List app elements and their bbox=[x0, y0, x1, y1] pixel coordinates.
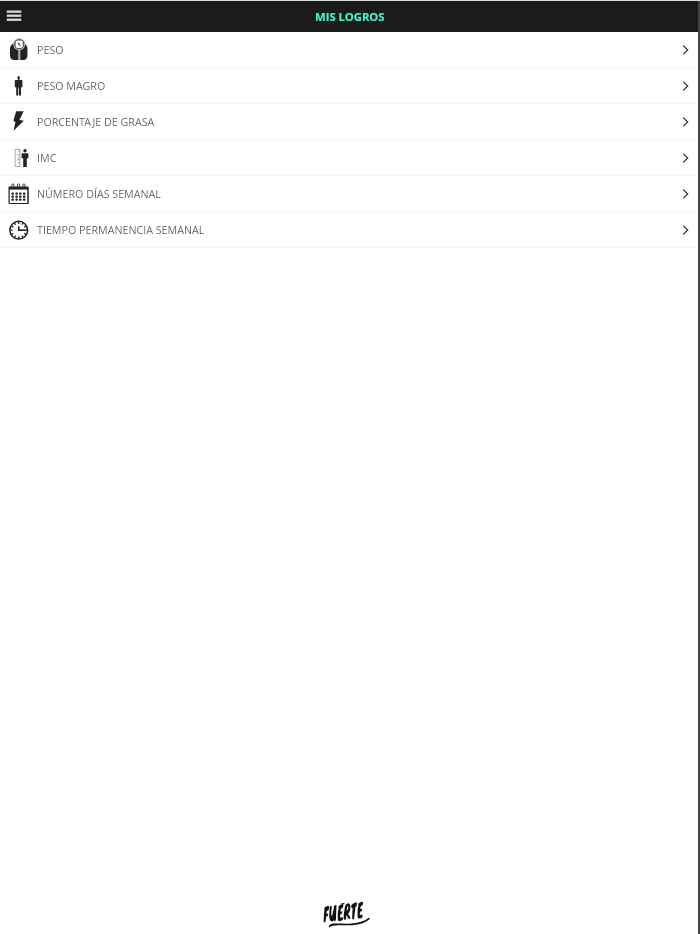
staticText: PESO MAGRO bbox=[37, 79, 106, 94]
button[interactable]: TIEMPO PERMANENCIA SEMANAL bbox=[0, 212, 700, 247]
staticText: IMC bbox=[37, 151, 57, 166]
button[interactable]: PESO bbox=[0, 32, 700, 67]
button[interactable]: PORCENTAJE DE GRASA bbox=[0, 104, 700, 139]
staticText: PESO bbox=[37, 43, 64, 58]
staticText: NÚMERO DÍAS SEMANAL bbox=[37, 187, 161, 202]
button[interactable]: Open navigation menu bbox=[0, 0, 28, 32]
button[interactable]: NÚMERO DÍAS SEMANAL bbox=[0, 176, 700, 211]
button[interactable]: PESO MAGRO bbox=[0, 68, 700, 103]
staticText: TIEMPO PERMANENCIA SEMANAL bbox=[37, 223, 205, 238]
staticText: FUERTE bbox=[321, 894, 365, 929]
staticText: PORCENTAJE DE GRASA bbox=[37, 115, 155, 130]
staticText: MIS LOGROS bbox=[315, 9, 385, 24]
button[interactable]: IMC bbox=[0, 140, 700, 175]
